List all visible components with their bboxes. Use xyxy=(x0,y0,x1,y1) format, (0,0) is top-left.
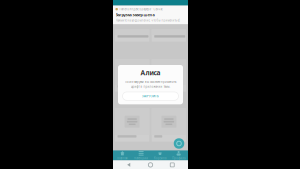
button[interactable]: ЗАГРУЗИТЬ xyxy=(122,92,178,100)
button[interactable] xyxy=(152,59,186,92)
staticText: ЗАГРУЗИТЬ xyxy=(142,94,159,98)
button[interactable]: Профиль xyxy=(169,151,188,160)
staticText: Загрузка завершена xyxy=(115,12,154,17)
button[interactable]: Home xyxy=(144,161,156,169)
button[interactable] xyxy=(152,108,186,142)
button[interactable]: Корзина xyxy=(150,151,169,160)
staticText: Нажмите на уведомление, чтобы применить … xyxy=(115,19,179,22)
button[interactable]: Chat xyxy=(173,138,184,149)
button[interactable]: Recent apps xyxy=(166,161,178,169)
staticText: После загрузки вы сможете применить xyxy=(125,80,176,84)
staticText: Алиса xyxy=(140,68,160,77)
button[interactable]: Категории xyxy=(132,151,151,160)
button[interactable]: Back xyxy=(123,161,135,169)
staticText: Профиль xyxy=(172,156,185,160)
button[interactable] xyxy=(115,59,149,92)
button[interactable] xyxy=(115,29,149,42)
staticText: шрифт в приложении Темы. xyxy=(130,85,170,88)
button[interactable] xyxy=(152,29,186,42)
button[interactable] xyxy=(115,108,149,142)
staticText: Корзина xyxy=(154,156,166,160)
button[interactable]: Главная xyxy=(113,151,132,160)
button[interactable]: Панель Яндекс Браузера · Сейчас xyxy=(113,6,188,24)
staticText: Панель Яндекс Браузера · Сейчас xyxy=(119,7,162,11)
staticText: Главная xyxy=(117,156,128,160)
staticText: Категории xyxy=(134,156,148,160)
